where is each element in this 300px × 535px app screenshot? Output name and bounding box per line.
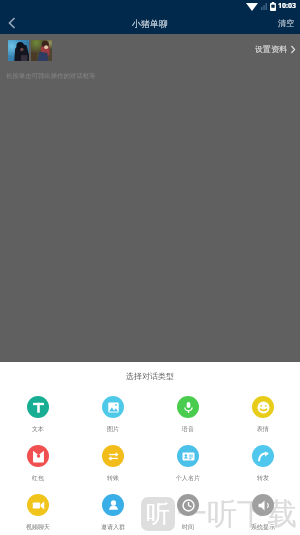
staticText: 邀请入群 bbox=[101, 523, 125, 531]
button[interactable]: 转发 bbox=[225, 443, 300, 484]
staticText: 系统提示 bbox=[251, 523, 275, 531]
staticText: 选择对话类型 bbox=[0, 371, 300, 381]
button[interactable]: 表情 bbox=[225, 394, 300, 435]
staticText: 个人名片 bbox=[176, 474, 200, 482]
staticText: 转账 bbox=[107, 474, 119, 482]
staticText: 红包 bbox=[32, 474, 44, 482]
staticText: 一听下载 bbox=[177, 495, 297, 533]
staticText: 小猪单聊 bbox=[132, 18, 168, 29]
staticText: 长按单击可弹出操作的对话框等 bbox=[6, 72, 96, 80]
button[interactable]: 时间 bbox=[150, 492, 225, 533]
button[interactable]: 设置资料 bbox=[250, 40, 300, 58]
button[interactable]: 系统提示 bbox=[225, 492, 300, 533]
button[interactable]: 红包 bbox=[0, 443, 75, 484]
button[interactable]: Avatar bbox=[31, 40, 52, 61]
button[interactable]: 视频聊天 bbox=[0, 492, 75, 533]
button[interactable]: Avatar bbox=[8, 40, 29, 61]
staticText: 表情 bbox=[257, 425, 269, 433]
staticText: 转发 bbox=[257, 474, 269, 482]
button[interactable]: Back bbox=[0, 12, 24, 34]
staticText: 听 bbox=[146, 499, 170, 529]
button[interactable]: 文本 bbox=[0, 394, 75, 435]
staticText: 文本 bbox=[32, 425, 44, 433]
button[interactable]: 个人名片 bbox=[150, 443, 225, 484]
button[interactable]: 语音 bbox=[150, 394, 225, 435]
staticText: 清空 bbox=[278, 18, 294, 28]
button[interactable]: 图片 bbox=[75, 394, 150, 435]
staticText: 图片 bbox=[107, 425, 119, 433]
staticText: 时间 bbox=[182, 523, 194, 531]
button[interactable]: 转账 bbox=[75, 443, 150, 484]
staticText: 10:03 bbox=[278, 1, 296, 11]
button[interactable]: 邀请入群 bbox=[75, 492, 150, 533]
staticText: 语音 bbox=[182, 425, 194, 433]
button[interactable]: 清空 bbox=[272, 14, 300, 32]
staticText: 设置资料 bbox=[255, 44, 287, 54]
staticText: 视频聊天 bbox=[26, 523, 50, 531]
